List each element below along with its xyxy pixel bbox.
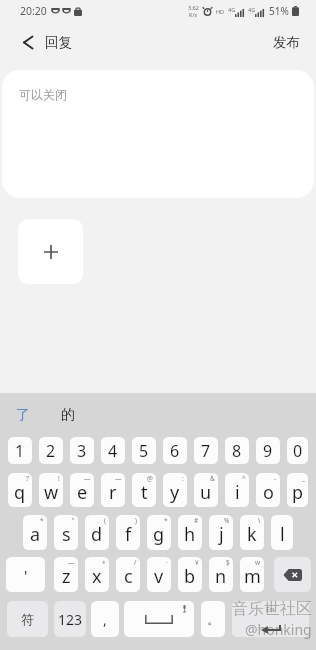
button[interactable]: 6	[163, 437, 187, 464]
staticText: K/s	[189, 11, 198, 18]
staticText: g	[153, 522, 165, 547]
staticText: *	[164, 516, 168, 525]
staticText: j	[219, 522, 224, 547]
staticText: 4G	[248, 6, 256, 13]
button[interactable]: t	[132, 473, 156, 507]
button[interactable]: 可以关闭	[2, 70, 314, 198]
staticText: $	[226, 558, 230, 567]
staticText: 51%	[269, 4, 289, 18]
staticText: c	[124, 564, 133, 589]
button[interactable]: 发布	[255, 25, 316, 60]
button[interactable]: n	[209, 557, 233, 592]
button[interactable]: l	[271, 515, 293, 550]
staticText: 可以关闭	[19, 87, 67, 102]
button[interactable]: x	[85, 557, 109, 592]
button[interactable]: Backspace	[274, 557, 311, 592]
button[interactable]: 9	[256, 437, 280, 464]
staticText: 发布	[273, 34, 300, 51]
button[interactable]: c	[116, 557, 140, 592]
staticText: 9	[263, 440, 273, 462]
staticText: @honking	[245, 620, 312, 639]
button[interactable]: ,	[91, 601, 119, 637]
button[interactable]: g	[147, 515, 171, 550]
staticText: 123	[58, 610, 83, 629]
button[interactable]: 123	[54, 601, 86, 637]
button[interactable]: i	[225, 473, 249, 507]
button[interactable]: z	[54, 557, 78, 592]
button[interactable]: p	[287, 473, 308, 507]
staticText: q	[14, 480, 26, 505]
staticText: x	[92, 564, 102, 589]
staticText: p	[292, 480, 304, 505]
button[interactable]: b	[178, 557, 202, 592]
button[interactable]: Add image	[18, 219, 83, 284]
staticText: !	[58, 474, 60, 483]
button[interactable]: h	[178, 515, 202, 550]
staticText: 4	[108, 440, 118, 462]
button[interactable]: k	[240, 515, 264, 550]
button[interactable]: m	[240, 557, 264, 592]
staticText: 8	[232, 440, 242, 462]
staticText: 音乐世社区	[232, 599, 312, 619]
staticText: v	[154, 564, 164, 589]
button[interactable]: r	[101, 473, 125, 507]
button[interactable]: Back	[0, 25, 82, 60]
button[interactable]: y	[163, 473, 187, 507]
staticText: :	[182, 474, 184, 483]
button[interactable]: 2	[39, 437, 63, 464]
staticText: HD	[216, 8, 225, 15]
button[interactable]: 4	[101, 437, 125, 464]
staticText: w	[44, 480, 59, 505]
button[interactable]: 8	[225, 437, 249, 464]
staticText: \	[258, 516, 261, 525]
button[interactable]: 5	[132, 437, 156, 464]
staticText: 7	[201, 440, 211, 462]
button[interactable]: q	[8, 473, 32, 507]
button[interactable]: v	[147, 557, 171, 592]
staticText: 的	[61, 406, 75, 424]
staticText: 。	[207, 611, 220, 627]
staticText: —	[68, 558, 75, 567]
button[interactable]: 的	[39, 398, 85, 432]
staticText: 符	[21, 611, 34, 627]
button[interactable]: o	[256, 473, 280, 507]
button[interactable]: 0	[287, 437, 308, 464]
button[interactable]: s	[54, 515, 78, 550]
staticText: b	[184, 564, 196, 589]
button[interactable]: 符	[7, 601, 48, 637]
button[interactable]: Space	[124, 601, 194, 637]
staticText: 回复	[45, 34, 72, 51]
staticText: 1	[15, 440, 25, 462]
staticText: 4G	[228, 6, 236, 13]
button[interactable]: 3	[70, 437, 94, 464]
staticText: m	[244, 564, 261, 589]
button[interactable]: 7	[194, 437, 218, 464]
staticText: s	[62, 522, 71, 547]
button[interactable]: w	[39, 473, 63, 507]
button[interactable]: 了	[0, 398, 39, 432]
staticText: 5	[139, 440, 149, 462]
staticText: e	[77, 480, 88, 505]
staticText: h	[184, 522, 196, 547]
button[interactable]: d	[85, 515, 109, 550]
staticText: En	[266, 605, 275, 615]
button[interactable]: a	[23, 515, 47, 550]
button[interactable]: e	[70, 473, 94, 507]
button[interactable]: u	[194, 473, 218, 507]
button[interactable]: 1	[8, 437, 32, 464]
button[interactable]: 。	[201, 601, 225, 637]
button[interactable]: f	[116, 515, 140, 550]
staticText: ^	[242, 474, 246, 483]
button[interactable]: Enter	[232, 601, 309, 637]
staticText: n	[215, 564, 227, 589]
staticText: ,	[103, 610, 107, 629]
staticText: —	[115, 474, 122, 483]
button[interactable]: '	[6, 557, 45, 592]
staticText: r	[109, 480, 117, 505]
staticText: 6	[170, 440, 180, 462]
button[interactable]: j	[209, 515, 233, 550]
staticText: k	[247, 522, 257, 547]
staticText: o	[263, 480, 274, 505]
staticText: (	[104, 516, 106, 525]
staticText: ¥	[195, 558, 199, 567]
